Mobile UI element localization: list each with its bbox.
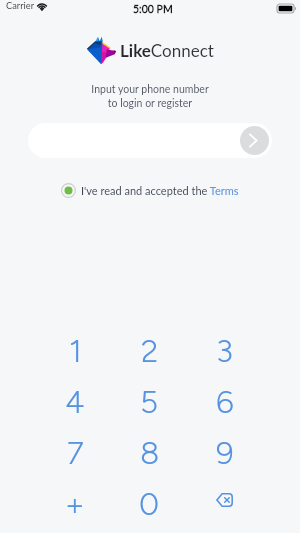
staticText: 7 <box>67 434 84 472</box>
button[interactable]: 6 <box>187 376 262 427</box>
other: Backspace <box>216 493 233 507</box>
button[interactable]: Continue <box>240 126 269 155</box>
button[interactable]: I've read and accepted the Terms <box>0 183 300 198</box>
staticText: 8 <box>140 434 160 472</box>
button[interactable]: 5 <box>112 376 187 427</box>
button[interactable]: 0 <box>112 478 187 529</box>
staticText: 9 <box>216 434 234 472</box>
staticText: 0 <box>139 485 160 523</box>
button[interactable]: 7 <box>38 427 112 478</box>
staticText: 3 <box>216 332 233 370</box>
staticText: + <box>65 485 85 523</box>
button[interactable]: + <box>38 478 112 529</box>
staticText: 5 <box>140 383 159 421</box>
staticText: Carrier <box>6 0 35 11</box>
staticText: 4 <box>65 383 85 421</box>
button[interactable]: Backspace <box>187 478 262 529</box>
staticText: 1 <box>69 332 82 370</box>
staticText: 6 <box>216 383 234 421</box>
staticText: Input your phone number to login or regi… <box>0 83 300 109</box>
button[interactable]: Phone number <box>28 123 272 158</box>
button[interactable]: 2 <box>112 325 187 376</box>
staticText: 2 <box>141 332 159 370</box>
staticText: 5:00 PM <box>133 3 173 16</box>
staticText: LikeConnect <box>120 40 214 60</box>
button[interactable]: 4 <box>38 376 112 427</box>
button[interactable]: 1 <box>38 325 112 376</box>
button[interactable]: 9 <box>187 427 262 478</box>
button[interactable]: 8 <box>112 427 187 478</box>
staticText: I've read and accepted the Terms <box>81 184 239 197</box>
button[interactable]: 3 <box>187 325 262 376</box>
